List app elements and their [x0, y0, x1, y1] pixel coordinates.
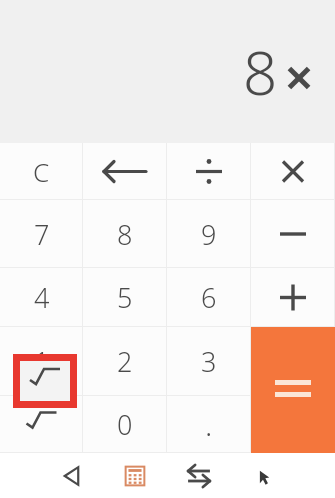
button[interactable]: Equals: [251, 327, 335, 453]
button[interactable]: Converter: [167, 453, 231, 498]
button[interactable]: Back: [40, 453, 103, 498]
staticText: 1: [34, 343, 50, 380]
button[interactable]: 9: [167, 200, 251, 268]
button[interactable]: 1: [0, 327, 83, 396]
button[interactable]: Backspace: [83, 143, 167, 200]
staticText: 5: [117, 279, 133, 316]
staticText: 0: [117, 406, 133, 443]
button[interactable]: 8: [83, 200, 167, 268]
staticText: C: [33, 154, 50, 189]
staticText: .: [205, 404, 213, 445]
staticText: 9: [201, 216, 217, 253]
staticText: 8: [243, 31, 278, 113]
button[interactable]: 2: [83, 327, 167, 396]
button[interactable]: .: [167, 396, 251, 453]
button[interactable]: 6: [167, 268, 251, 327]
button[interactable]: 5: [83, 268, 167, 327]
button[interactable]: Divide: [167, 143, 251, 200]
button[interactable]: C: [0, 143, 83, 200]
button[interactable]: 4: [0, 268, 83, 327]
button[interactable]: Menu: [231, 453, 295, 498]
button[interactable]: Multiply: [251, 143, 335, 200]
staticText: 8: [117, 216, 133, 253]
button[interactable]: Calculator: [103, 453, 167, 498]
button[interactable]: Square root: [0, 396, 83, 453]
button[interactable]: 0: [83, 396, 167, 453]
staticText: 2: [117, 343, 133, 380]
button[interactable]: 3: [167, 327, 251, 396]
button[interactable]: Plus: [251, 268, 335, 327]
staticText: 6: [201, 279, 217, 316]
staticText: 3: [201, 343, 217, 380]
button[interactable]: 7: [0, 200, 83, 268]
staticText: 4: [34, 279, 50, 316]
staticText: 7: [34, 216, 50, 253]
button[interactable]: Minus: [251, 200, 335, 268]
